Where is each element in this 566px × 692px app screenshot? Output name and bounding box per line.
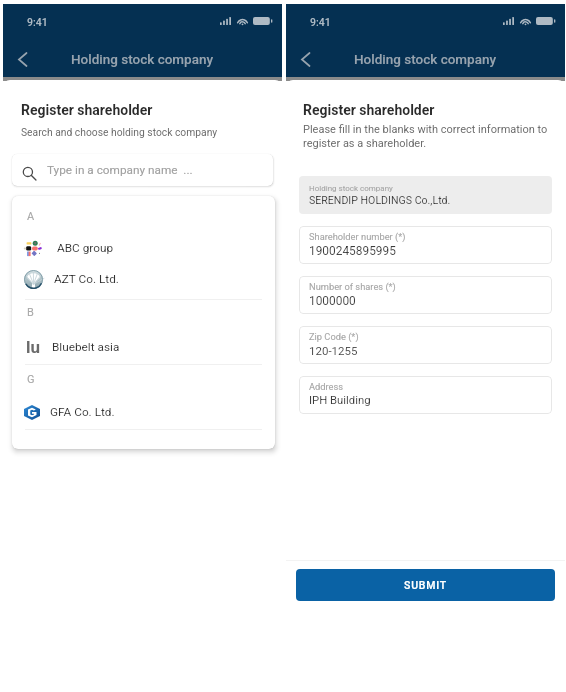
staticText: 120-1255	[309, 344, 358, 357]
staticText: Type in a company name ...	[47, 163, 193, 177]
staticText: Holding stock company	[354, 51, 497, 67]
staticText: SUBMIT	[404, 579, 448, 591]
button[interactable]: lu	[12, 333, 275, 360]
button[interactable]: Number of shares (*)	[299, 276, 552, 314]
button[interactable]: Type in a company name ...	[12, 154, 273, 186]
button[interactable]: Address	[299, 376, 552, 414]
staticText: IPH Building	[309, 394, 371, 407]
button[interactable]: Holding stock company	[299, 176, 552, 214]
staticText: SERENDIP HOLDINGS Co.,Ltd.	[309, 194, 451, 206]
button[interactable]: Back	[289, 43, 321, 75]
button[interactable]: SUBMIT	[296, 569, 555, 601]
button[interactable]: Back	[6, 43, 38, 75]
staticText: Search and choose holding stock company	[21, 126, 218, 138]
button[interactable]: Zip Code (*)	[299, 326, 552, 364]
staticText: GFA Co. Ltd.	[50, 405, 115, 419]
staticText: Number of shares (*)	[309, 281, 396, 292]
staticText: A	[27, 210, 35, 223]
button[interactable]: ABC group	[12, 234, 275, 261]
staticText: 9:41	[27, 16, 48, 28]
staticText: G	[27, 373, 35, 386]
staticText: AZT Co. Ltd.	[54, 272, 119, 286]
staticText: 1900245895995	[309, 244, 396, 258]
button[interactable]: AZT Co. Ltd.	[12, 265, 275, 292]
button[interactable]: Shareholder number (*)	[299, 226, 552, 264]
staticText: Holding stock company	[71, 51, 214, 67]
staticText: Zip Code (*)	[309, 331, 359, 342]
staticText: Register shareholder	[21, 102, 153, 118]
staticText: 1000000	[309, 294, 356, 308]
staticText: Address	[309, 381, 344, 392]
staticText: Please fill in the blanks with correct i…	[303, 123, 551, 149]
staticText: Bluebelt asia	[52, 340, 120, 354]
staticText: B	[27, 306, 34, 319]
staticText: 9:41	[310, 16, 331, 28]
staticText: Holding stock company	[309, 184, 393, 193]
staticText: ABC group	[57, 241, 114, 255]
staticText: lu	[26, 337, 41, 357]
staticText: Shareholder number (*)	[309, 231, 406, 242]
staticText: Register shareholder	[303, 102, 435, 118]
button[interactable]: GFA Co. Ltd.	[12, 398, 275, 425]
